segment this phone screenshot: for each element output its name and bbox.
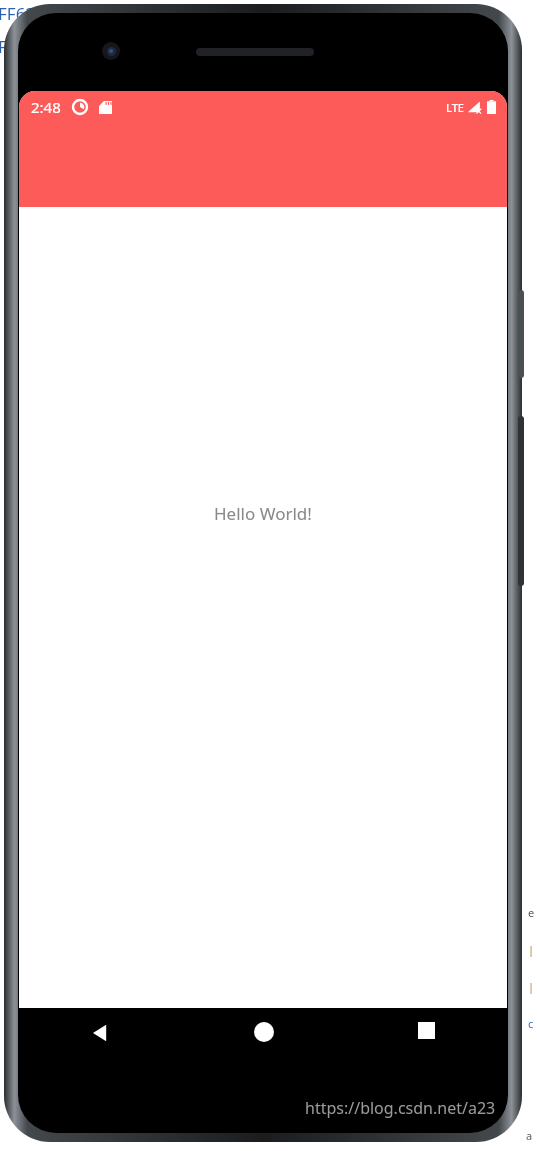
staticText: | bbox=[528, 942, 535, 957]
staticText: | bbox=[528, 979, 535, 994]
button[interactable]: Recent apps bbox=[345, 1008, 508, 1068]
staticText: F bbox=[0, 35, 7, 58]
staticText: FF62 bbox=[0, 2, 36, 25]
staticText: 2:48 bbox=[31, 97, 61, 117]
staticText: c bbox=[528, 1016, 534, 1031]
staticText: LTE bbox=[446, 100, 464, 115]
button[interactable]: Home bbox=[182, 1008, 345, 1068]
button[interactable]: Back bbox=[18, 1008, 182, 1068]
staticText: https://blog.csdn.net/a23 bbox=[305, 1097, 496, 1119]
staticText: Hello World! bbox=[214, 502, 312, 525]
staticText: a bbox=[526, 1128, 533, 1143]
staticText: e bbox=[528, 905, 535, 920]
